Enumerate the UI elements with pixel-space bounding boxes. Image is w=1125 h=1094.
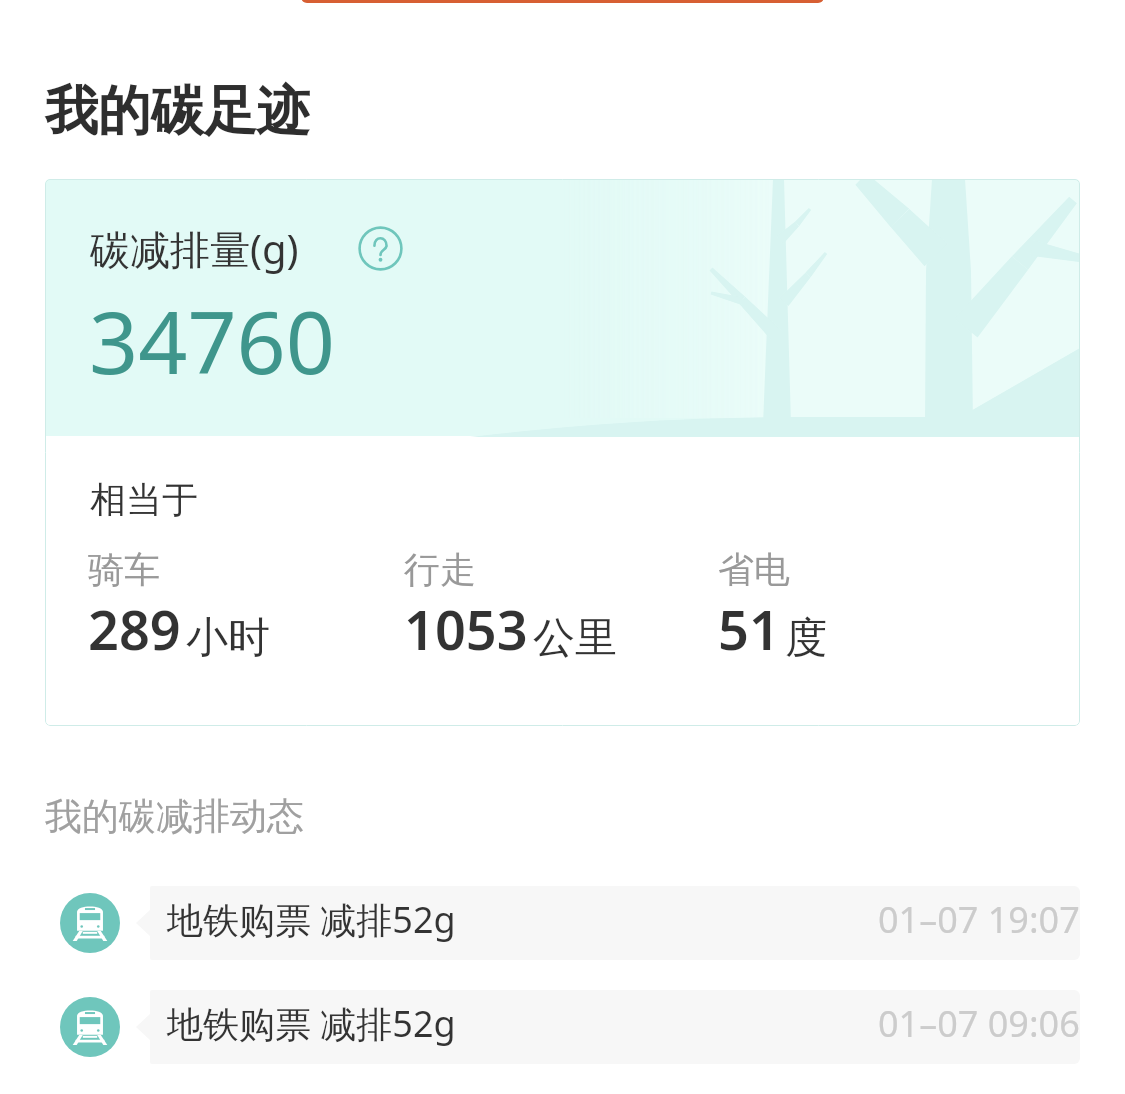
staticText: 我的碳减排动态: [45, 793, 304, 840]
staticText: 行走: [404, 547, 476, 592]
staticText: 骑车: [88, 547, 160, 592]
staticText: 度: [785, 612, 827, 665]
staticText: 289: [88, 592, 181, 666]
staticText: 地铁购票 减排52g: [167, 895, 456, 944]
staticText: 1053: [404, 592, 528, 666]
button[interactable]: 地铁购票 减排52g: [0, 886, 1125, 960]
button[interactable]: 碳减排量说明: [351, 219, 409, 277]
staticText: 51: [718, 592, 780, 666]
staticText: 相当于: [90, 477, 198, 522]
staticText: 01–07 09:06: [878, 999, 1080, 1048]
staticText: 小时: [186, 612, 270, 665]
staticText: 我的碳足迹: [45, 78, 310, 145]
staticText: 01–07 19:07: [878, 895, 1080, 944]
button[interactable]: 地铁购票 减排52g: [0, 990, 1125, 1064]
staticText: 省电: [718, 547, 790, 592]
staticText: 碳减排量(g): [90, 221, 299, 276]
staticText: 34760: [89, 282, 335, 399]
staticText: 公里: [533, 612, 617, 665]
staticText: 地铁购票 减排52g: [167, 999, 456, 1048]
